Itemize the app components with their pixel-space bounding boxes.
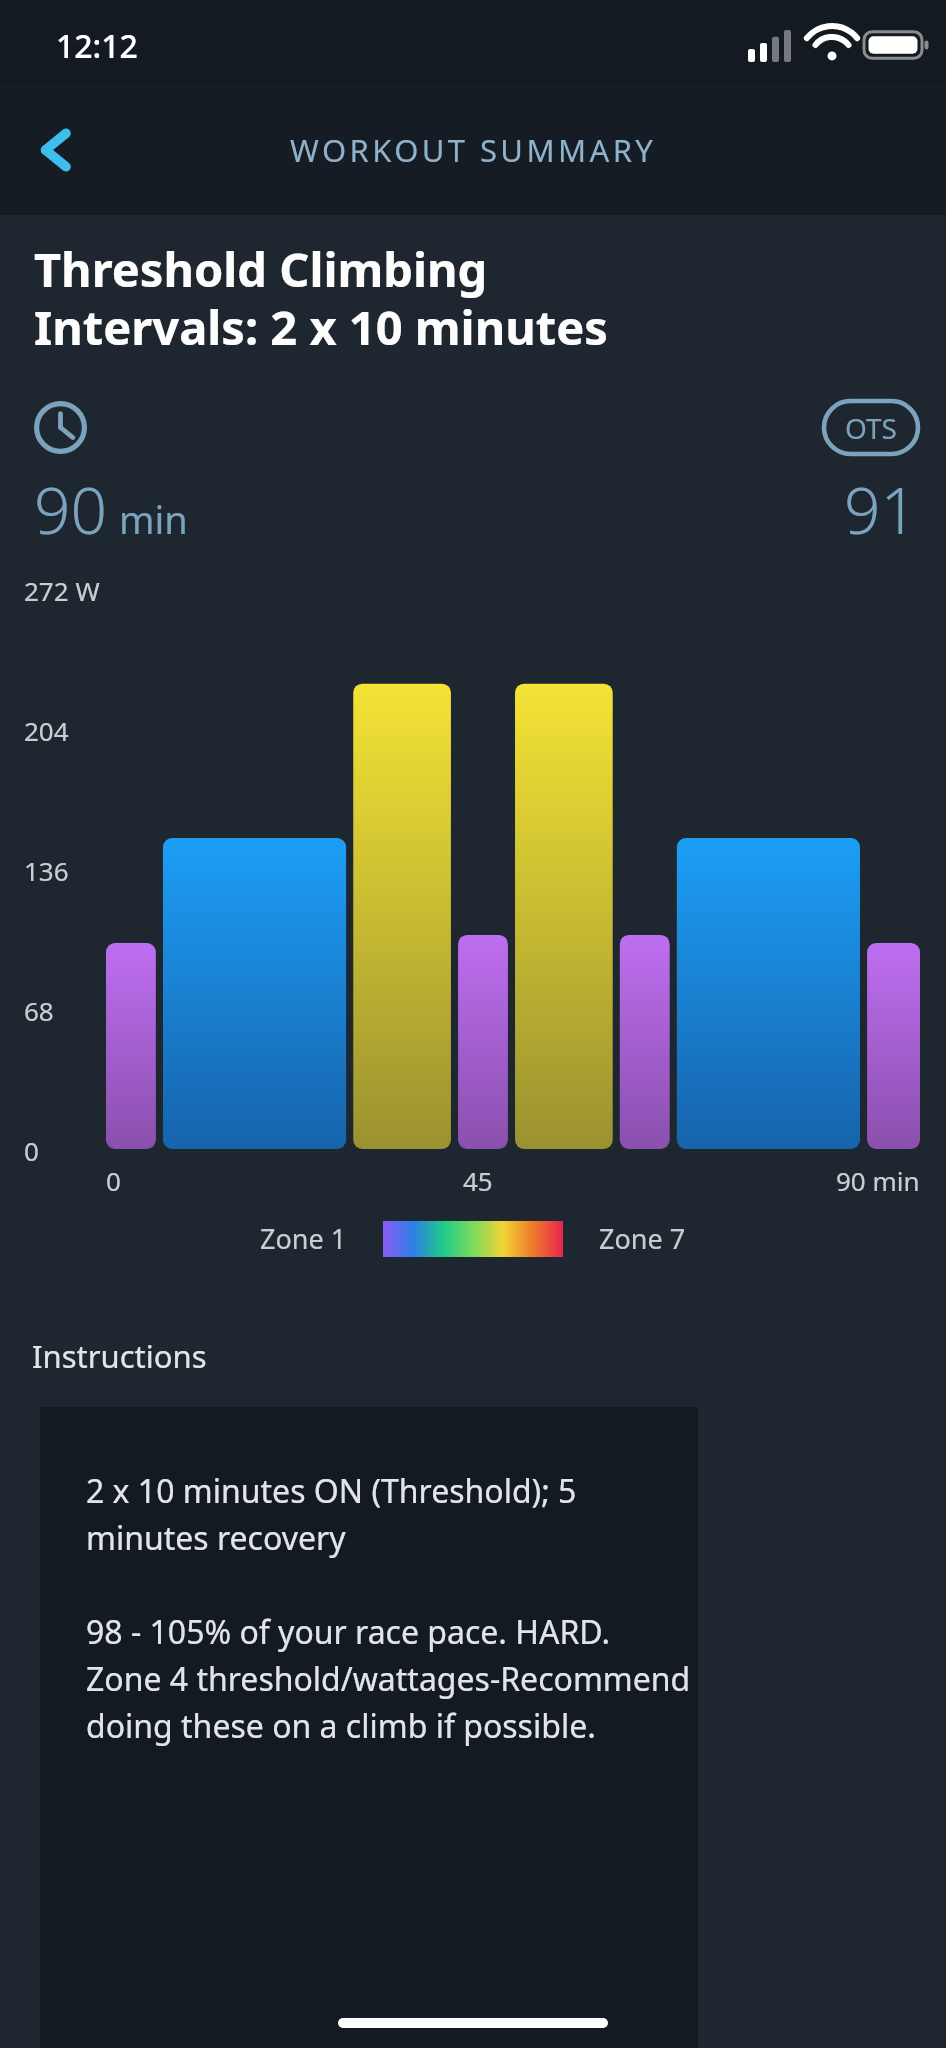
staticText: Zone 7 (599, 1220, 686, 1257)
staticText: Threshold Climbing Intervals: 2 x 10 min… (34, 237, 608, 359)
staticText: 2 x 10 minutes ON (Threshold); 5 minutes… (86, 1469, 692, 1747)
staticText: 272 W (24, 573, 100, 608)
staticText: 90 (34, 466, 108, 553)
staticText: 45 (463, 1163, 493, 1198)
staticText: Zone 1 (260, 1220, 347, 1257)
staticText: WORKOUT SUMMARY (290, 129, 657, 171)
staticText: Instructions (32, 1335, 207, 1377)
staticText: 91 (844, 466, 918, 553)
staticText: 136 (24, 853, 69, 888)
button[interactable]: Back (18, 112, 94, 188)
staticText: 204 (24, 713, 69, 748)
staticText: min (119, 493, 188, 545)
staticText: 0 (106, 1163, 121, 1198)
staticText: 0 (24, 1133, 39, 1168)
staticText: 90 min (836, 1163, 920, 1198)
button[interactable]: 2 x 10 minutes ON (Threshold); 5 minutes… (40, 1407, 698, 2048)
staticText: OTS (845, 409, 897, 447)
staticText: 68 (24, 993, 54, 1028)
staticText: 12:12 (56, 24, 138, 68)
